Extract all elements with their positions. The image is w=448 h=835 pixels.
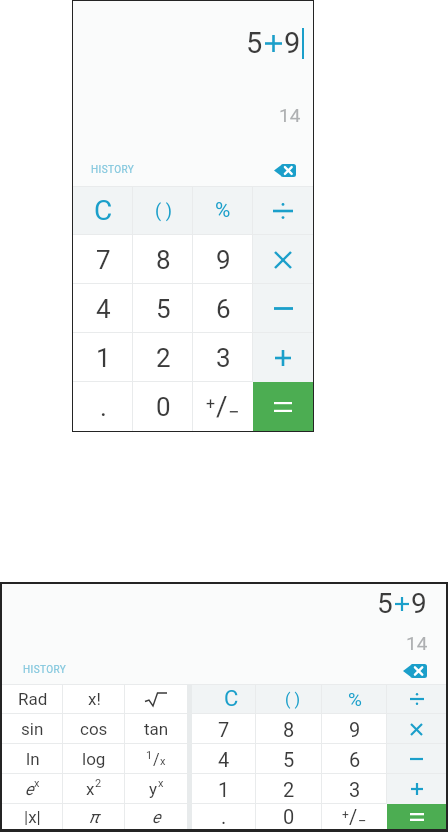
button[interactable]: 2 <box>133 333 193 382</box>
button[interactable]: 3 <box>193 333 253 382</box>
button[interactable]: Rad <box>2 684 63 714</box>
staticText: HISTORY <box>23 664 67 676</box>
staticText: 4 <box>218 748 230 771</box>
staticText: 3 <box>349 778 361 801</box>
staticText: 4 <box>96 294 111 324</box>
button[interactable]: 4 <box>73 284 133 333</box>
button[interactable] <box>387 714 446 744</box>
button[interactable]: 8 <box>256 714 322 744</box>
staticText: 5 <box>246 26 263 60</box>
staticText: e <box>152 807 161 827</box>
button[interactable] <box>387 744 446 774</box>
staticText: 5 <box>283 748 295 771</box>
button[interactable]: tan <box>125 714 187 744</box>
button[interactable]: sin <box>2 714 63 744</box>
button[interactable]: ( ) <box>256 684 322 714</box>
button[interactable]: 7 <box>192 714 256 744</box>
staticText: π <box>89 807 99 827</box>
staticText: 2 <box>283 778 295 801</box>
staticText: 7 <box>218 718 230 741</box>
button[interactable] <box>387 804 446 829</box>
button[interactable]: e <box>2 774 63 804</box>
staticText: 9 <box>216 245 231 275</box>
button[interactable]: 6 <box>193 284 253 333</box>
button[interactable]: 3 <box>322 774 387 804</box>
button[interactable]: C <box>73 186 133 235</box>
button[interactable]: 1 <box>125 744 187 774</box>
button[interactable] <box>253 333 313 382</box>
button[interactable]: 1 <box>192 774 256 804</box>
button[interactable] <box>387 684 446 714</box>
staticText: + <box>206 394 216 413</box>
staticText: 9 <box>284 26 301 60</box>
staticText: x <box>34 777 40 790</box>
staticText: 3 <box>216 343 231 373</box>
button[interactable]: y <box>125 774 187 804</box>
button[interactable]: cos <box>63 714 125 744</box>
staticText: 5 <box>156 294 171 324</box>
staticText: % <box>215 198 231 223</box>
staticText: x <box>158 777 164 790</box>
staticText: 9 <box>349 718 361 741</box>
staticText: 1 <box>218 778 230 801</box>
button[interactable]: 2 <box>256 774 322 804</box>
button[interactable] <box>253 382 313 431</box>
button[interactable] <box>387 774 446 804</box>
staticText: 5 <box>377 587 393 620</box>
staticText: x <box>160 755 166 768</box>
button[interactable]: 4 <box>192 744 256 774</box>
staticText: 14 <box>406 632 428 654</box>
staticText: cos <box>80 719 108 739</box>
button[interactable]: HISTORY <box>91 164 135 176</box>
button[interactable]: e <box>125 804 187 829</box>
button[interactable]: ln <box>2 744 63 774</box>
staticText: 6 <box>349 748 361 771</box>
button[interactable] <box>253 235 313 284</box>
button[interactable]: . <box>192 804 256 829</box>
button[interactable] <box>274 164 296 177</box>
staticText: tan <box>144 719 169 739</box>
staticText: 9 <box>411 587 427 620</box>
button[interactable]: 6 <box>322 744 387 774</box>
staticText: ln <box>26 749 40 769</box>
button[interactable]: 8 <box>133 235 193 284</box>
button[interactable]: |x| <box>2 804 63 829</box>
staticText: 8 <box>156 245 171 275</box>
button[interactable]: % <box>322 684 387 714</box>
staticText: ( ) <box>285 690 301 709</box>
button[interactable]: . <box>73 382 133 431</box>
button[interactable]: ( ) <box>133 186 193 235</box>
button[interactable]: 1 <box>73 333 133 382</box>
staticText: |x| <box>24 807 41 827</box>
button[interactable]: HISTORY <box>23 664 67 676</box>
button[interactable] <box>125 684 187 714</box>
button[interactable]: log <box>63 744 125 774</box>
button[interactable]: 0 <box>256 804 322 829</box>
button[interactable]: % <box>193 186 253 235</box>
button[interactable]: + <box>322 804 387 829</box>
staticText: ( ) <box>155 200 172 221</box>
staticText: 6 <box>216 294 231 324</box>
button[interactable]: 5 <box>133 284 193 333</box>
button[interactable]: 0 <box>133 382 193 431</box>
button[interactable]: C <box>192 684 256 714</box>
staticText: − <box>358 812 367 829</box>
staticText: 7 <box>96 245 111 275</box>
button[interactable]: + <box>193 382 253 431</box>
staticText: 0 <box>283 805 295 828</box>
button[interactable]: 5 <box>256 744 322 774</box>
button[interactable]: x! <box>63 684 125 714</box>
button[interactable] <box>253 284 313 333</box>
button[interactable]: 9 <box>193 235 253 284</box>
staticText: + <box>342 808 349 822</box>
staticText: 0 <box>156 392 171 422</box>
button[interactable]: x <box>63 774 125 804</box>
button[interactable]: π <box>63 804 125 829</box>
button[interactable]: 9 <box>322 714 387 744</box>
staticText: e <box>25 779 34 799</box>
staticText: 1 <box>146 749 153 762</box>
staticText: x <box>86 779 95 799</box>
button[interactable] <box>253 186 313 235</box>
button[interactable] <box>403 664 427 678</box>
button[interactable]: 7 <box>73 235 133 284</box>
